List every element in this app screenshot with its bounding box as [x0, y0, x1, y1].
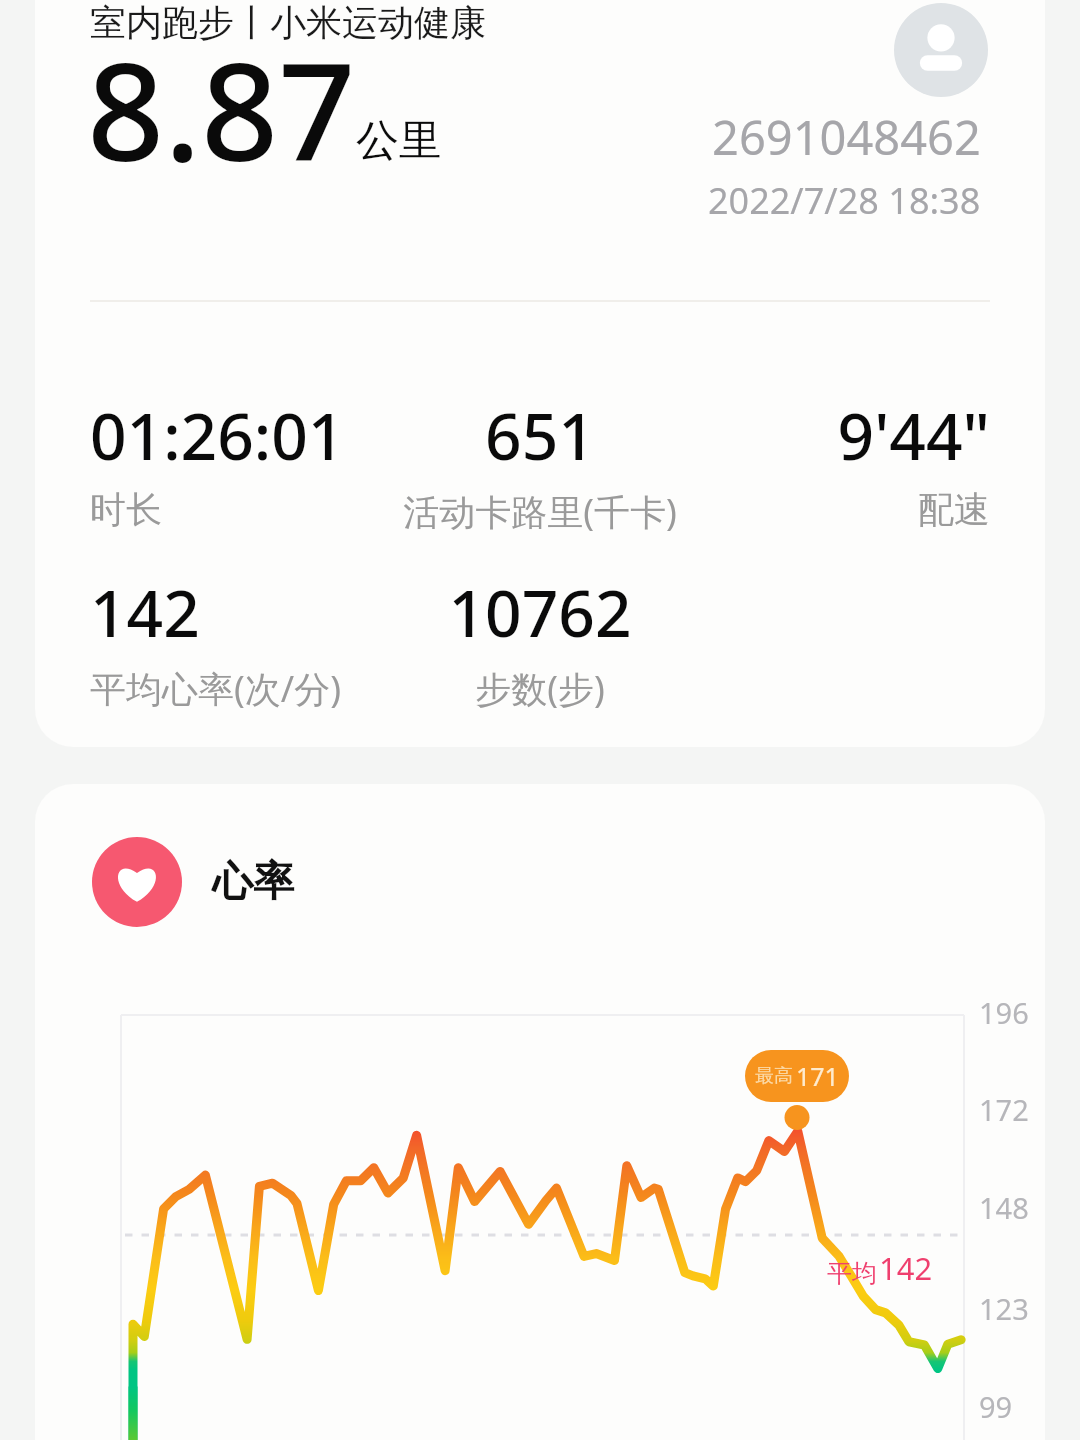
button[interactable]: 9'44" — [690, 392, 990, 532]
staticText: 活动卡路里(千卡) — [390, 487, 690, 536]
staticText: 142 — [90, 569, 390, 656]
staticText: 2691048462 — [712, 105, 981, 169]
button[interactable]: Maximum heart rate 171 — [745, 1050, 849, 1102]
staticText: 148 — [979, 1188, 1029, 1227]
button[interactable]: 651 — [390, 392, 690, 536]
staticText: 196 — [979, 993, 1029, 1032]
staticText: 10762 — [390, 569, 690, 656]
staticText: 步数(步) — [390, 664, 690, 713]
staticText: 平均 — [827, 1258, 877, 1289]
staticText: 平均心率(次/分) — [90, 664, 390, 713]
staticText: 公里 — [356, 114, 442, 168]
staticText: 171 — [796, 1059, 839, 1093]
other: Heart rate — [92, 837, 182, 927]
button[interactable]: 10762 — [390, 569, 690, 713]
staticText: 172 — [979, 1090, 1029, 1129]
staticText: 9'44" — [690, 392, 990, 479]
staticText: 651 — [390, 392, 690, 479]
button[interactable]: 01:26:01 — [90, 392, 390, 532]
staticText: 01:26:01 — [90, 392, 390, 479]
button[interactable]: Profile — [894, 3, 988, 97]
button[interactable]: 142 — [90, 569, 390, 713]
staticText: 142 — [879, 1247, 933, 1289]
staticText: 8.87 — [87, 17, 356, 201]
staticText: 配速 — [690, 487, 990, 532]
staticText: 最高 — [755, 1064, 793, 1088]
staticText: 123 — [979, 1289, 1029, 1328]
staticText: 室内跑步丨小米运动健康 — [90, 0, 486, 45]
button[interactable]: 室内跑步丨小米运动健康 — [35, 0, 1045, 747]
staticText: 2022/7/28 18:38 — [708, 176, 981, 225]
button[interactable]: Heart rate — [35, 784, 1045, 1440]
staticText: 99 — [979, 1387, 1013, 1426]
staticText: 心率 — [212, 856, 294, 908]
staticText: 时长 — [90, 487, 390, 532]
